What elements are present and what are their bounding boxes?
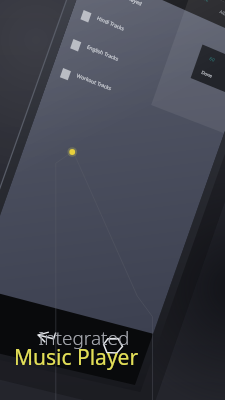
button[interactable]: Integrated Music Player feature promo (0, 0, 225, 400)
